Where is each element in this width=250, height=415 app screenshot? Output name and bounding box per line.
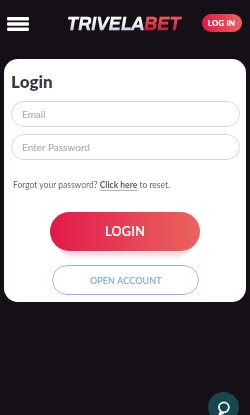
button[interactable]: Email bbox=[11, 101, 240, 127]
button[interactable]: LOG IN bbox=[202, 14, 242, 32]
staticText: Email bbox=[22, 108, 46, 120]
button[interactable]: LOGIN bbox=[50, 212, 200, 251]
staticText: Enter Password bbox=[22, 141, 90, 153]
staticText: TRIVELABET bbox=[67, 14, 181, 34]
button[interactable]: Enter Password bbox=[11, 134, 240, 160]
staticText: LOGIN bbox=[105, 224, 146, 239]
staticText: LOG IN bbox=[208, 19, 236, 28]
staticText: OPEN ACCOUNT bbox=[90, 275, 162, 286]
button[interactable]: OPEN ACCOUNT bbox=[52, 265, 199, 295]
button[interactable]: Open chat support bbox=[208, 392, 239, 415]
button[interactable]: Menu bbox=[2, 11, 34, 36]
staticText: Login bbox=[11, 71, 53, 91]
staticText: Forgot your password? Click here to rese… bbox=[13, 180, 171, 190]
